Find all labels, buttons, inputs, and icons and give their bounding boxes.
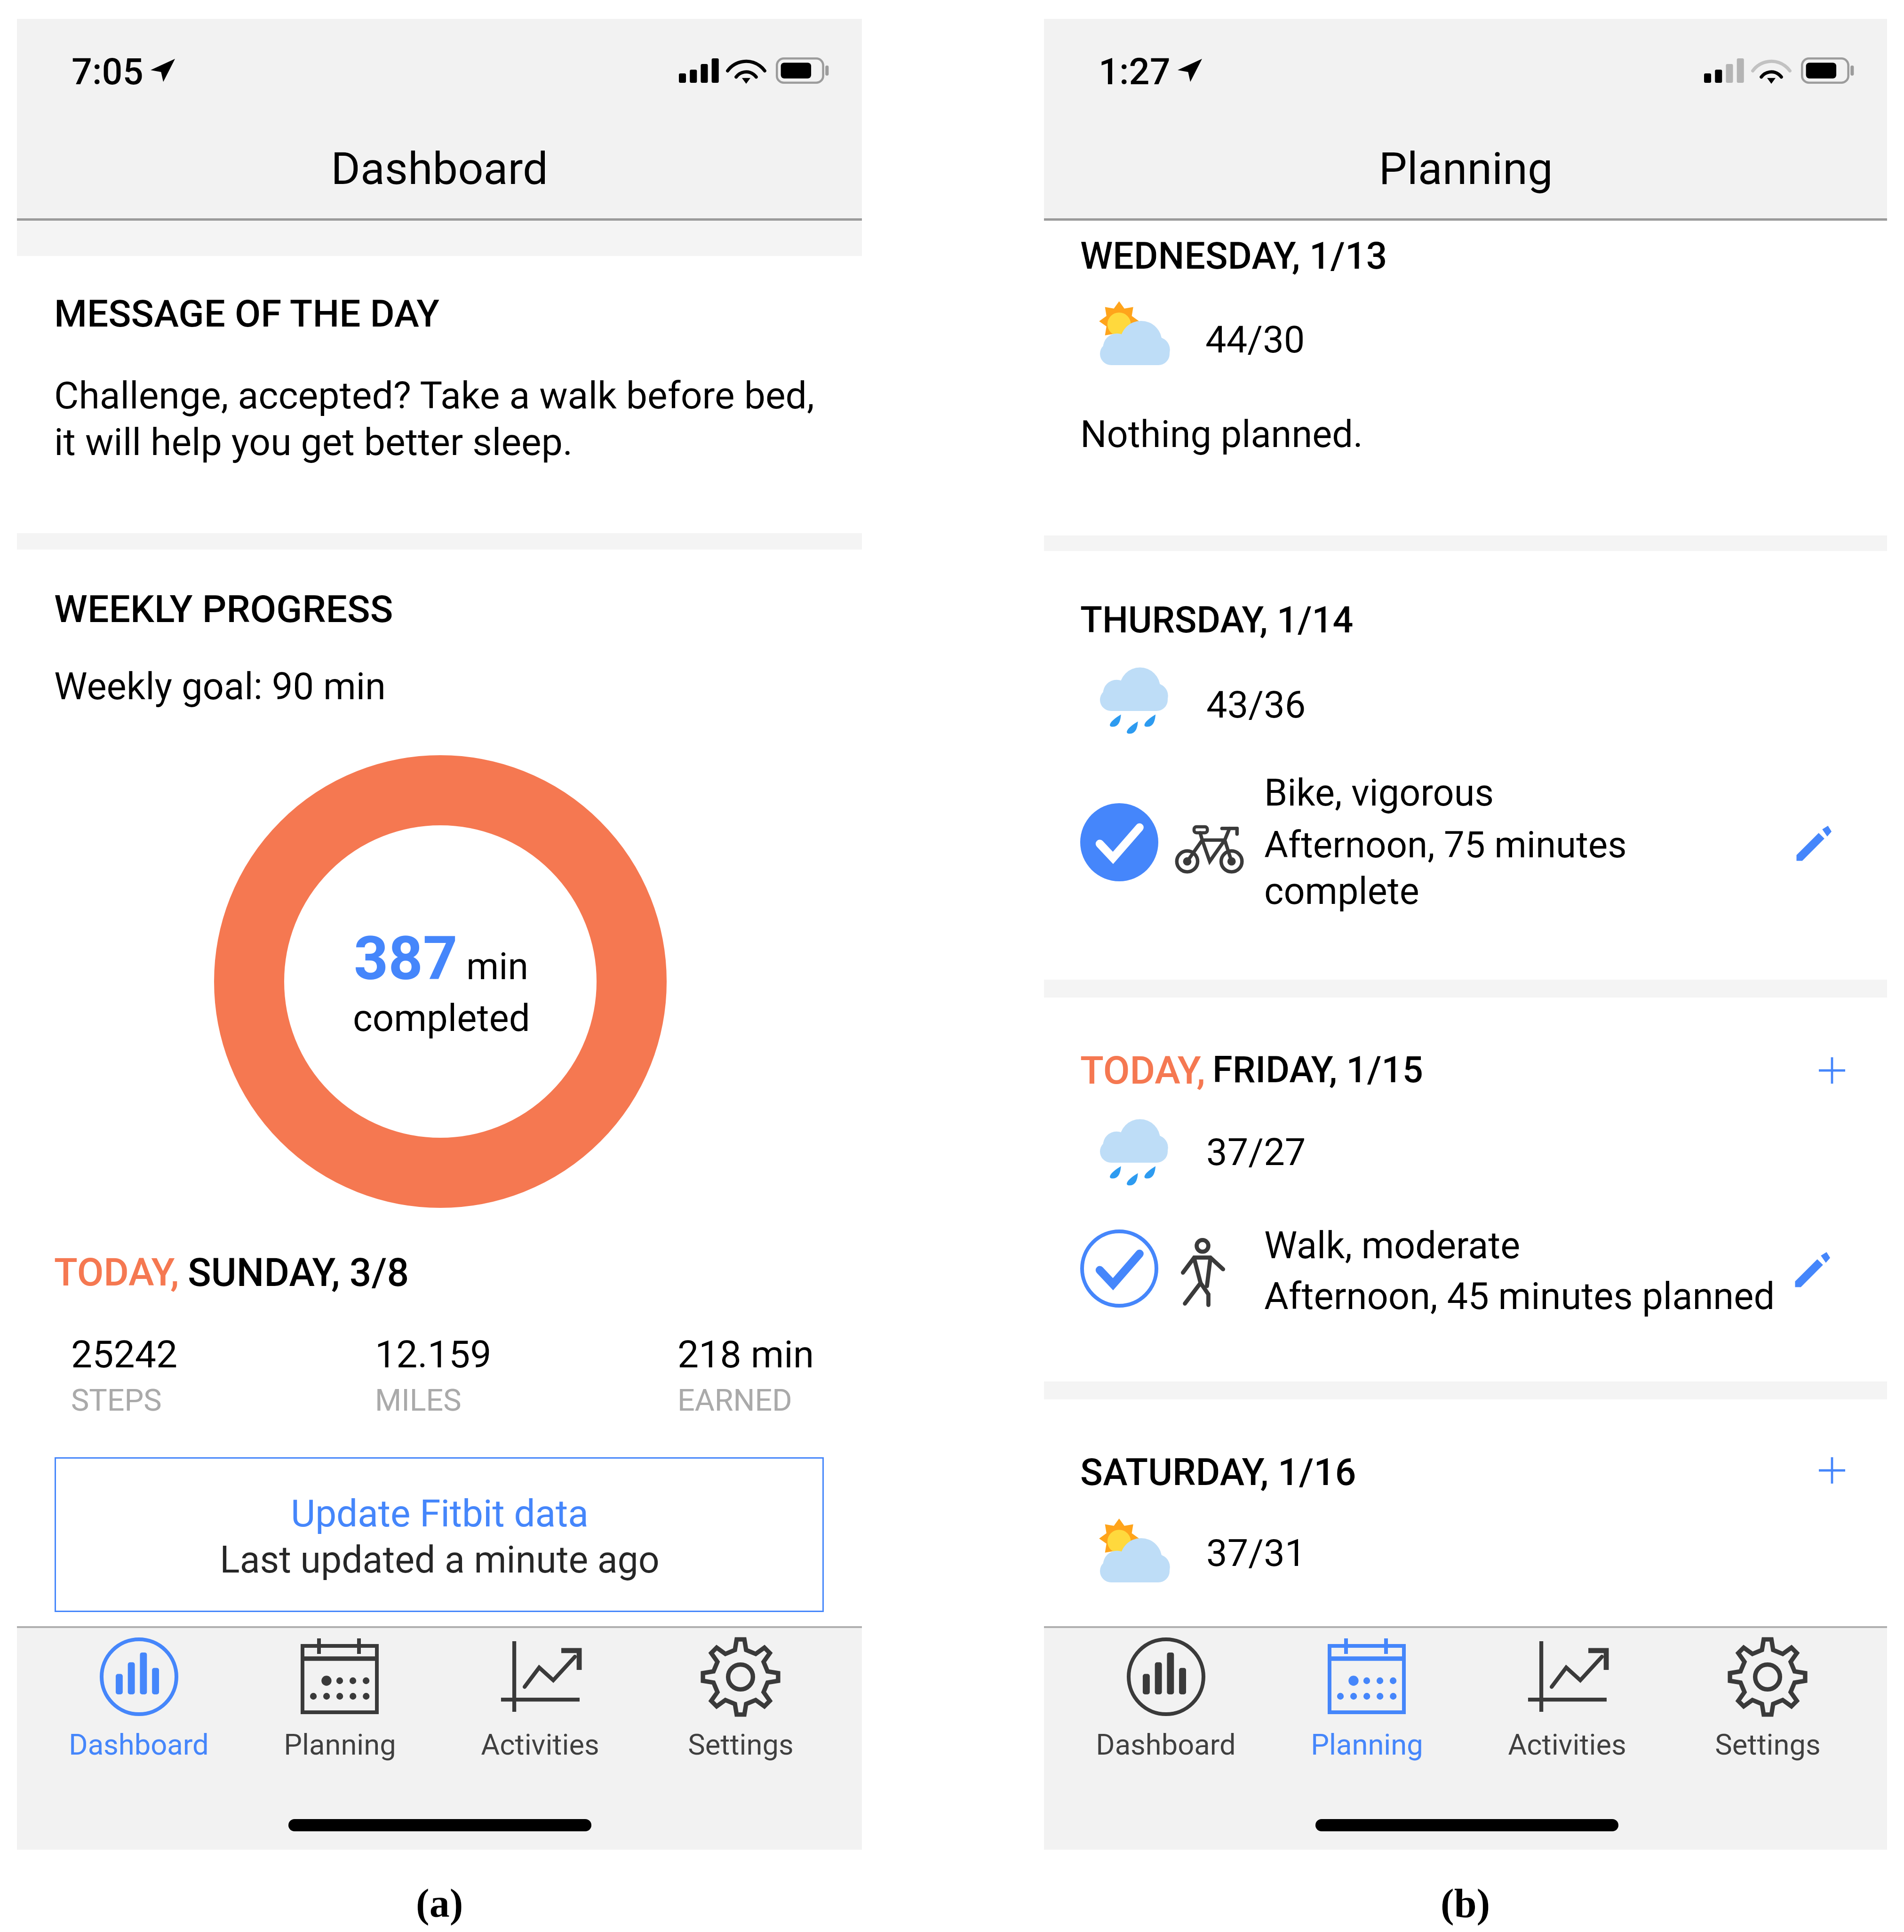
staticText: Last updated a minute ago — [220, 1538, 660, 1581]
staticText: Dashboard — [331, 142, 548, 195]
button[interactable]: Activities — [440, 1630, 640, 1790]
staticText: Settings — [688, 1728, 794, 1762]
staticText: completed — [353, 996, 530, 1040]
staticText: FRIDAY, 1/15 — [1212, 1048, 1424, 1091]
staticText: Planning — [1311, 1728, 1423, 1762]
button[interactable]: Edit — [1778, 1239, 1844, 1305]
staticText: Dashboard — [1096, 1728, 1236, 1762]
staticText: 37/31 — [1206, 1531, 1306, 1575]
staticText: (b) — [1441, 1881, 1490, 1925]
staticText: 25242 — [71, 1332, 178, 1376]
staticText: 218 min — [677, 1332, 814, 1376]
button[interactable]: Dashboard — [1066, 1630, 1266, 1790]
staticText: 387 — [354, 923, 458, 994]
button[interactable]: Add activity — [1804, 1442, 1860, 1499]
staticText: Activities — [1508, 1728, 1626, 1762]
button[interactable]: Completed — [1077, 800, 1162, 885]
staticText: 12.159 — [375, 1332, 492, 1376]
button[interactable] — [55, 1457, 824, 1612]
button[interactable]: Dashboard — [39, 1630, 239, 1790]
staticText: min — [466, 945, 529, 989]
staticText: complete — [1264, 870, 1419, 913]
staticText: MILES — [375, 1382, 462, 1418]
button[interactable]: Settings — [640, 1630, 841, 1790]
staticText: Dashboard — [69, 1728, 209, 1762]
button[interactable]: Planning — [1267, 1630, 1467, 1790]
staticText: STEPS — [71, 1382, 162, 1418]
button[interactable]: Planning — [239, 1630, 440, 1790]
staticText: 43/36 — [1206, 683, 1306, 726]
staticText: MESSAGE OF THE DAY — [54, 292, 439, 336]
staticText: SUNDAY, 3/8 — [188, 1250, 409, 1295]
button[interactable]: Mark complete — [1077, 1226, 1162, 1311]
staticText: Nothing planned. — [1080, 412, 1363, 456]
staticText: Afternoon, 75 minutes — [1264, 823, 1627, 866]
staticText: 1:27 — [1099, 50, 1171, 93]
staticText: TODAY, — [54, 1250, 179, 1295]
button[interactable]: Edit — [1780, 813, 1846, 878]
staticText: 37/27 — [1206, 1130, 1306, 1174]
staticText: 7:05 — [72, 50, 143, 93]
staticText: WEDNESDAY, 1/13 — [1080, 234, 1387, 278]
staticText: Update Fitbit data — [291, 1492, 589, 1536]
staticText: Weekly goal: 90 min — [54, 664, 386, 708]
button[interactable]: Settings — [1667, 1630, 1868, 1790]
button[interactable]: Activities — [1467, 1630, 1667, 1790]
staticText: (a) — [416, 1881, 463, 1925]
staticText: 44/30 — [1205, 318, 1305, 361]
button[interactable]: Add activity — [1804, 1042, 1860, 1099]
staticText: Bike, vigorous — [1264, 771, 1494, 815]
staticText: THURSDAY, 1/14 — [1080, 599, 1354, 641]
staticText: Planning — [1378, 142, 1553, 195]
staticText: Walk, moderate — [1264, 1224, 1521, 1268]
staticText: Planning — [284, 1728, 396, 1762]
staticText: SATURDAY, 1/16 — [1080, 1450, 1356, 1494]
staticText: Challenge, accepted? Take a walk before … — [54, 373, 814, 417]
staticText: TODAY, — [1080, 1048, 1205, 1093]
staticText: it will help you get better sleep. — [54, 420, 573, 464]
staticText: WEEKLY PROGRESS — [54, 587, 393, 631]
staticText: Settings — [1715, 1728, 1821, 1762]
staticText: Activities — [481, 1728, 599, 1762]
staticText: Afternoon, 45 minutes planned — [1264, 1274, 1775, 1318]
staticText: EARNED — [677, 1382, 792, 1418]
